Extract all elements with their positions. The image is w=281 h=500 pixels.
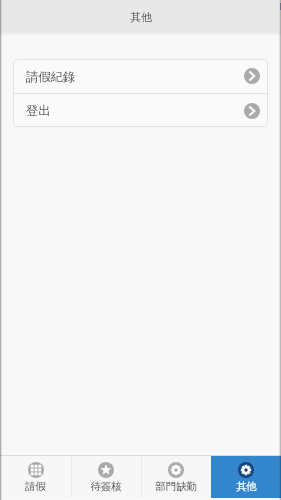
button[interactable]: 其他 [211, 456, 281, 498]
staticText: 待簽核 [90, 480, 122, 493]
staticText: 其他 [236, 480, 257, 493]
staticText: 登出 [26, 103, 51, 118]
staticText: 請假紀錄 [26, 69, 76, 84]
button[interactable]: 部門缺勤 [141, 456, 211, 498]
button[interactable]: 待簽核 [71, 456, 141, 498]
other: Open 登出 [244, 103, 260, 119]
staticText: 請假 [25, 480, 46, 493]
button[interactable]: 請假紀錄 [13, 59, 268, 93]
other: Open 請假紀錄 [244, 68, 260, 84]
staticText: 部門缺勤 [155, 480, 197, 493]
button[interactable]: 請假 [0, 456, 71, 498]
staticText: 其他 [130, 10, 152, 24]
button[interactable]: 登出 [13, 94, 268, 127]
